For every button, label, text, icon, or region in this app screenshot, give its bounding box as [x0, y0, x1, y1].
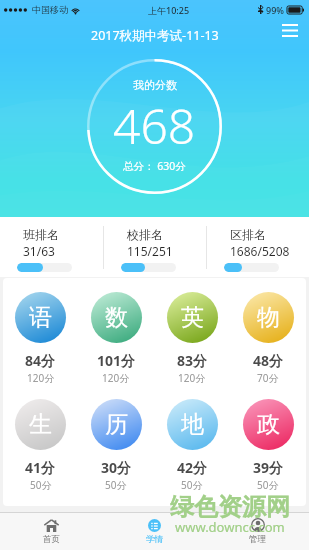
staticText: 中国移动	[32, 4, 68, 15]
button[interactable]: 历	[78, 392, 154, 499]
staticText: 70分	[257, 371, 279, 385]
staticText: 41分	[25, 458, 56, 477]
staticText: 总分： 630分	[123, 159, 186, 173]
button[interactable]: 首页	[0, 513, 103, 550]
staticText: www.downcc.com	[175, 518, 285, 536]
staticText: 物	[257, 303, 280, 332]
staticText: 39分	[253, 458, 284, 477]
staticText: 学情	[146, 534, 163, 545]
staticText: 48分	[253, 351, 284, 370]
button[interactable]: 校排名	[104, 217, 206, 277]
staticText: 50分	[181, 478, 203, 492]
staticText: 政	[257, 410, 280, 439]
button[interactable]: 物	[230, 285, 306, 392]
staticText: 99%	[266, 4, 284, 16]
staticText: 31/63	[23, 243, 55, 259]
button[interactable]: 生	[3, 392, 78, 499]
button[interactable]: 地	[154, 392, 230, 499]
button[interactable]: 数	[78, 285, 154, 392]
staticText: 绿色资源网	[170, 492, 290, 522]
staticText: 管理	[249, 534, 266, 545]
staticText: 历	[105, 410, 128, 439]
button[interactable]: Menu	[277, 17, 303, 43]
button[interactable]: 管理	[206, 513, 309, 550]
staticText: 我的分数	[133, 78, 177, 92]
button[interactable]: 学情	[103, 513, 206, 550]
staticText: 首页	[43, 534, 60, 545]
staticText: 83分	[177, 351, 208, 370]
staticText: 生	[29, 410, 52, 439]
button[interactable]: 政	[230, 392, 306, 499]
staticText: 英	[181, 303, 204, 332]
staticText: 84分	[25, 351, 56, 370]
staticText: 468	[113, 93, 196, 158]
staticText: 1686/5208	[230, 243, 290, 259]
staticText: 地	[181, 410, 204, 439]
staticText: 42分	[177, 458, 208, 477]
button[interactable]: 区排名	[207, 217, 309, 277]
staticText: 120分	[27, 371, 55, 385]
staticText: 50分	[30, 478, 52, 492]
staticText: 120分	[178, 371, 206, 385]
staticText: 50分	[257, 478, 279, 492]
staticText: 2017秋期中考试-11-13	[91, 27, 219, 44]
staticText: 数	[105, 303, 128, 332]
staticText: 30分	[101, 458, 132, 477]
staticText: 101分	[97, 351, 136, 370]
button[interactable]: 语	[3, 285, 78, 392]
staticText: 120分	[102, 371, 130, 385]
staticText: 校排名	[127, 227, 163, 242]
staticText: 50分	[105, 478, 127, 492]
staticText: 区排名	[230, 227, 266, 242]
staticText: 班排名	[23, 227, 59, 242]
staticText: 上午10:25	[148, 4, 190, 16]
staticText: 语	[29, 303, 52, 332]
button[interactable]: 英	[154, 285, 230, 392]
staticText: 115/251	[127, 243, 173, 259]
button[interactable]: 班排名	[0, 217, 103, 277]
